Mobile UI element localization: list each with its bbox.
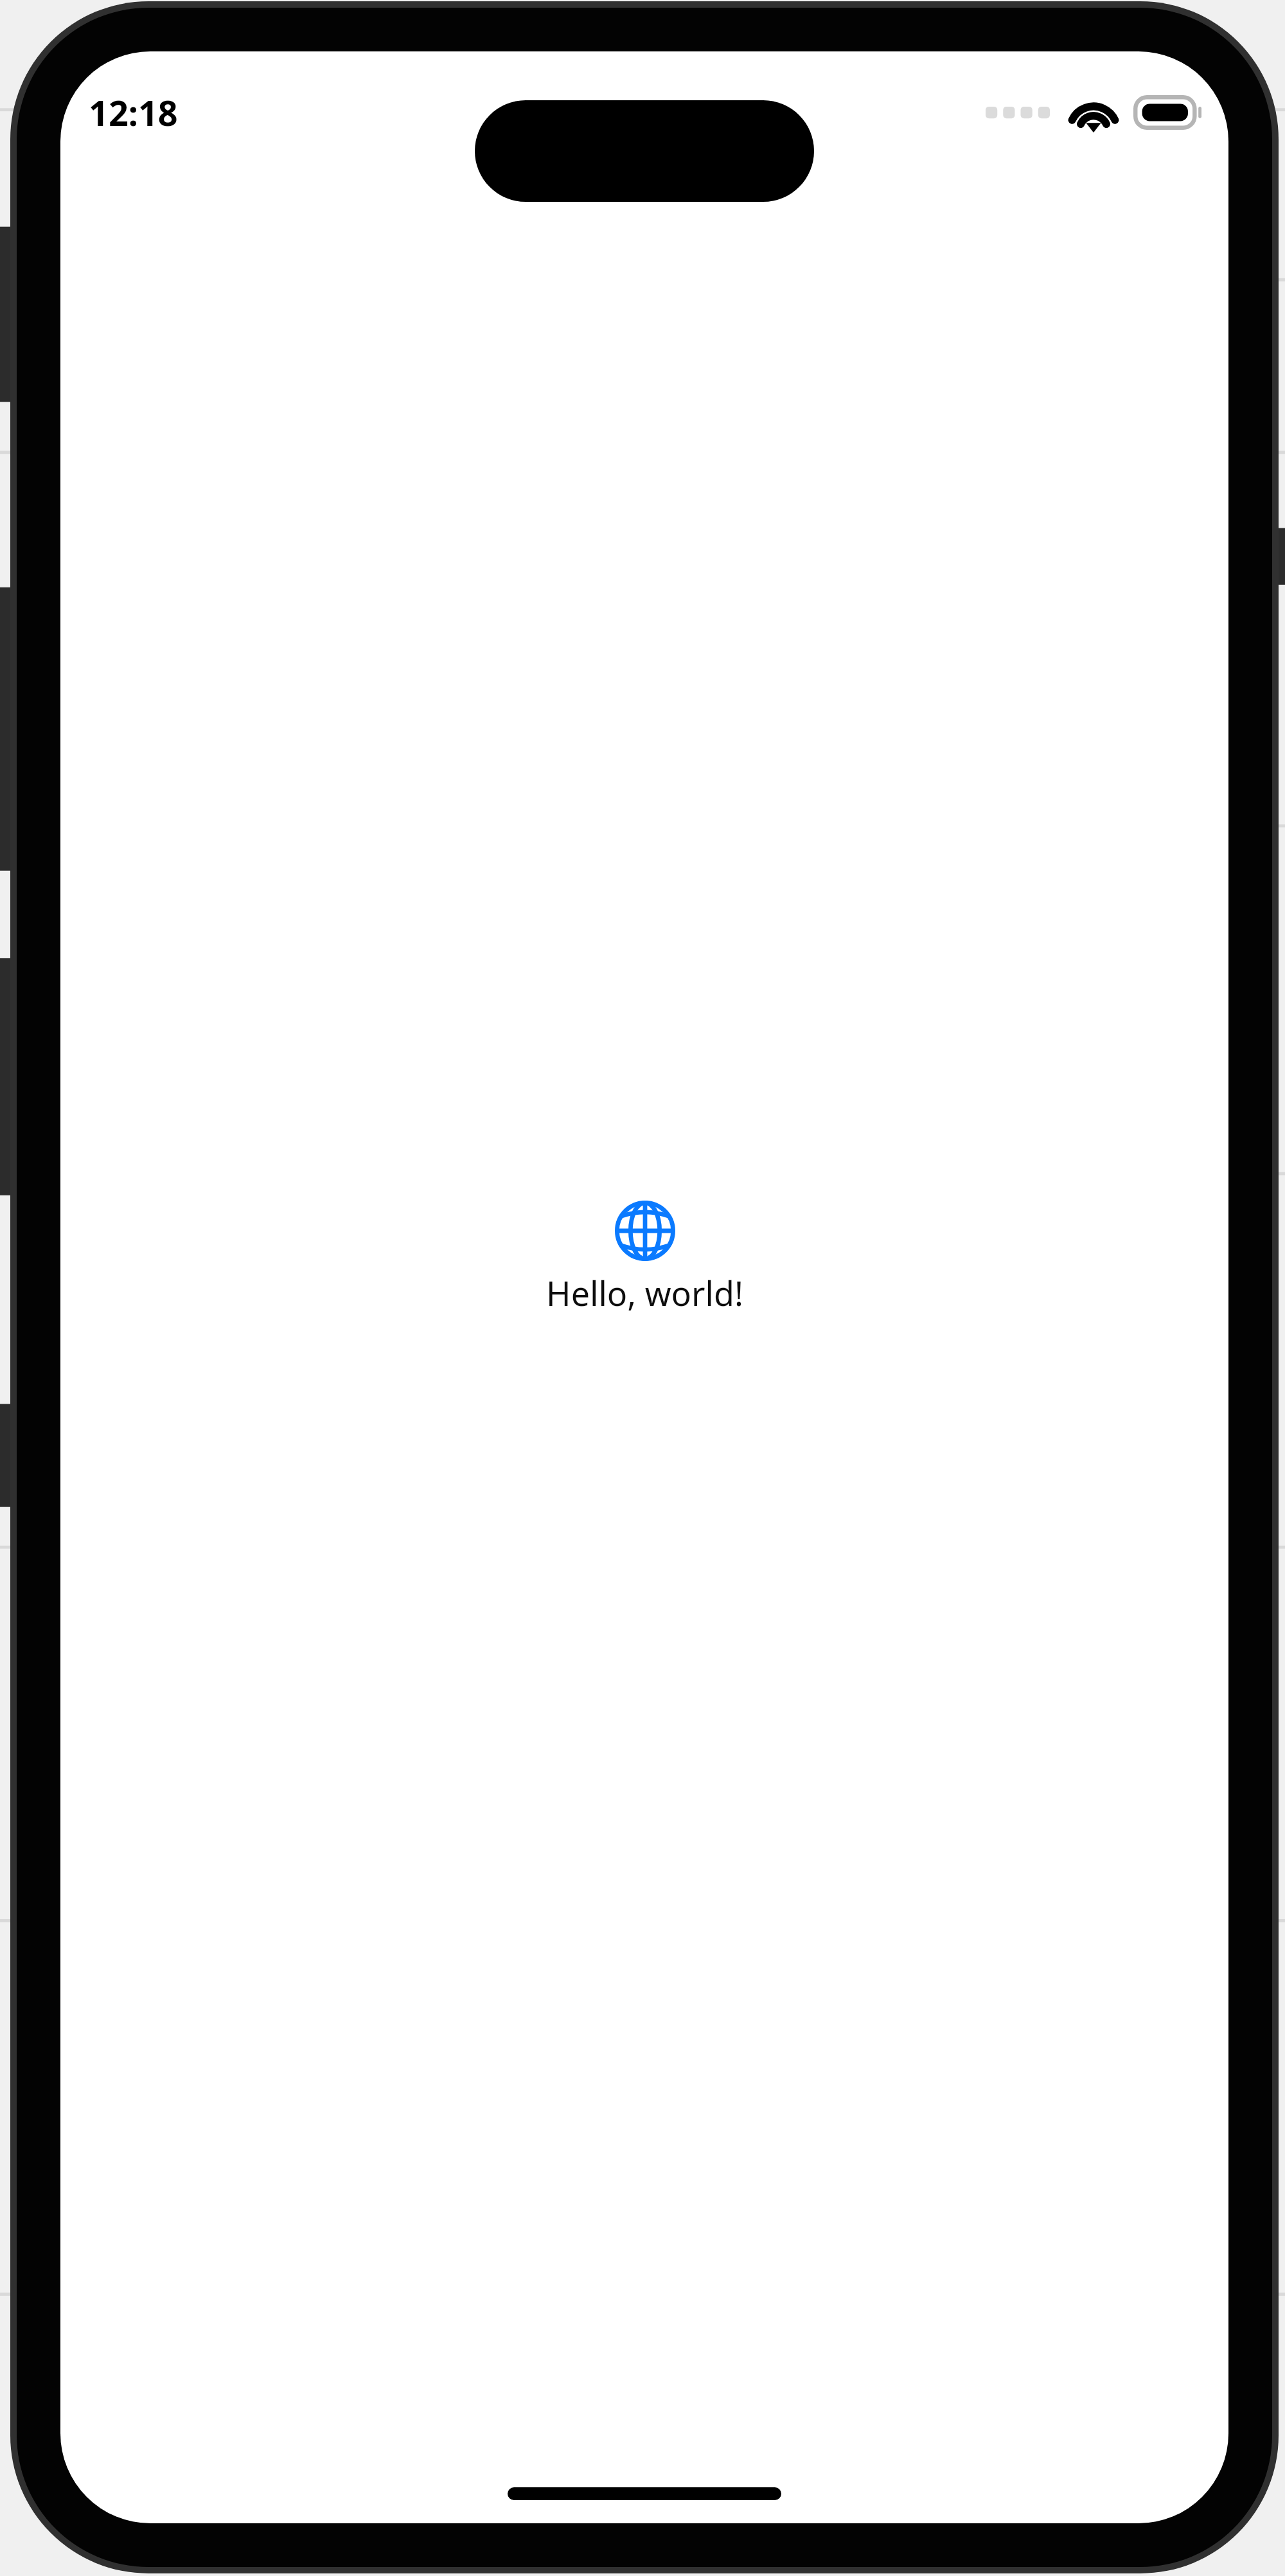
other: Wi-Fi [1068, 94, 1119, 131]
staticText: 12:18 [89, 89, 178, 136]
other: Globe [615, 1201, 675, 1261]
other: Cellular signal [986, 104, 1050, 121]
staticText: Hello, world! [546, 1270, 743, 1316]
other: Dynamic Island [475, 100, 814, 202]
other: Battery full [1133, 95, 1201, 130]
